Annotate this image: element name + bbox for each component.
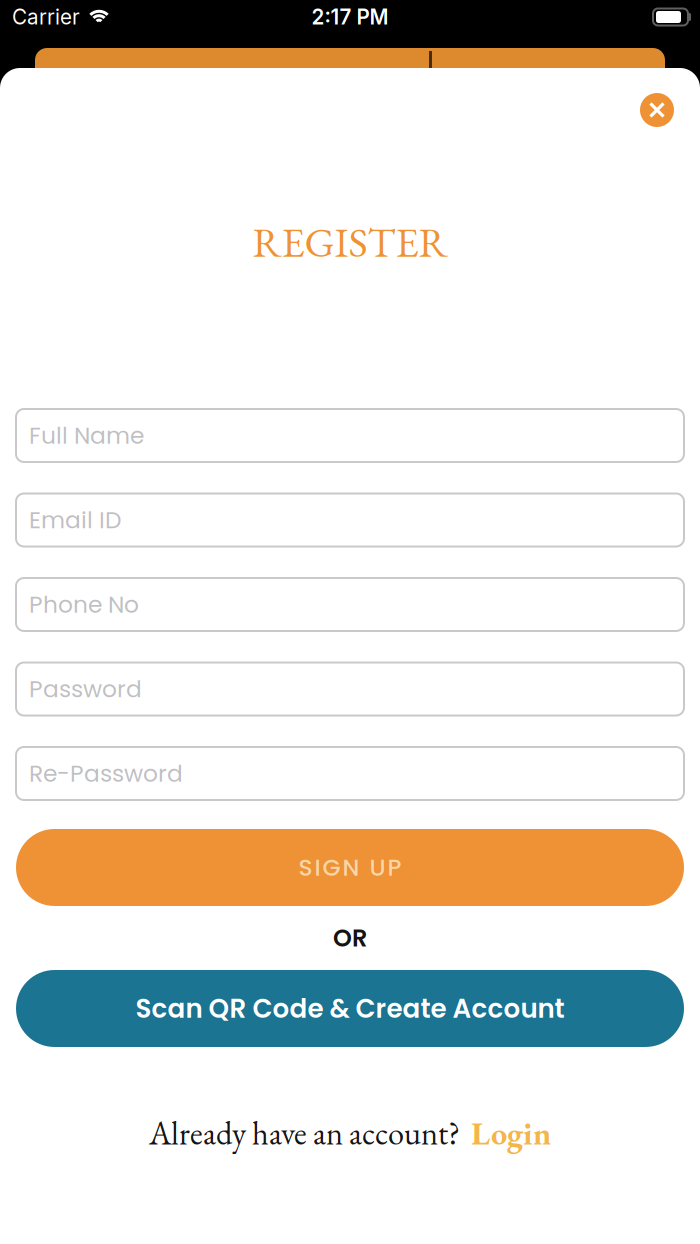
button[interactable]: Login [471,1112,551,1154]
staticText: Already have an account? [149,1112,460,1154]
button[interactable]: Scan QR Code & Create Account [16,970,684,1047]
staticText: Email ID [29,504,121,536]
button[interactable]: Email ID [16,493,684,546]
button[interactable]: Phone No [16,578,684,631]
staticText: OR [333,921,367,955]
button[interactable]: Full Name [16,409,684,462]
staticText: 2:17 PM [311,4,388,29]
button[interactable]: Close [640,93,674,127]
button[interactable]: SIGN UP [16,829,684,906]
staticText: Scan QR Code & Create Account [135,990,564,1027]
staticText: Password [29,673,142,705]
staticText: SIGN UP [298,851,401,884]
button[interactable]: Re-Password [16,747,684,800]
staticText: Login [471,1112,551,1154]
staticText: Re-Password [29,757,183,790]
staticText: Carrier [12,4,80,29]
staticText: REGISTER [252,215,447,269]
staticText: Phone No [29,588,139,621]
staticText: Full Name [29,419,144,452]
button[interactable]: Password [16,662,684,715]
